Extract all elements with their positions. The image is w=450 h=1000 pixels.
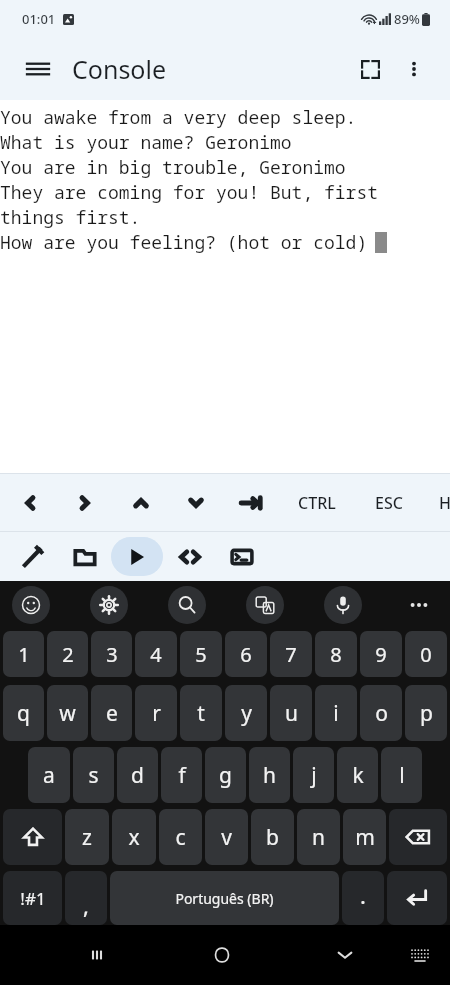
- button[interactable]: Fullscreen: [348, 47, 392, 91]
- button[interactable]: i: [315, 685, 357, 741]
- button[interactable]: t: [180, 685, 222, 741]
- button[interactable]: n: [297, 809, 340, 865]
- button[interactable]: Shift: [3, 809, 62, 865]
- button[interactable]: c: [159, 809, 202, 865]
- button[interactable]: Emoji: [12, 586, 50, 624]
- button[interactable]: Translate: [246, 586, 284, 624]
- button[interactable]: Open navigation menu: [18, 49, 58, 89]
- staticText: h: [263, 761, 276, 790]
- button[interactable]: !#1: [3, 871, 62, 925]
- button[interactable]: h: [249, 747, 290, 803]
- button[interactable]: Keyboard settings: [90, 586, 128, 624]
- staticText: 7: [285, 641, 297, 668]
- button[interactable]: o: [360, 685, 402, 741]
- staticText: They are coming for you! But, first: [0, 180, 378, 205]
- button[interactable]: Right: [59, 474, 111, 531]
- staticText: d: [131, 761, 144, 790]
- staticText: c: [175, 823, 186, 852]
- button[interactable]: y: [225, 685, 267, 741]
- button[interactable]: Voice input: [324, 586, 362, 624]
- staticText: 0: [420, 641, 432, 668]
- button[interactable]: Down: [170, 474, 222, 531]
- staticText: ,: [83, 890, 89, 920]
- button[interactable]: 7: [270, 631, 312, 677]
- button[interactable]: p: [405, 685, 447, 741]
- staticText: 1: [18, 641, 30, 668]
- staticText: t: [197, 699, 205, 728]
- button[interactable]: g: [205, 747, 246, 803]
- button[interactable]: More keyboard options: [402, 588, 436, 622]
- staticText: 2: [62, 641, 74, 668]
- button[interactable]: Switch keyboard: [396, 925, 444, 985]
- staticText: Português (BR): [175, 889, 274, 908]
- button[interactable]: k: [337, 747, 378, 803]
- button[interactable]: Tab: [225, 474, 277, 531]
- button[interactable]: Home: [196, 925, 248, 985]
- button[interactable]: More options: [392, 47, 436, 91]
- button[interactable]: 6: [225, 631, 267, 677]
- staticText: Console: [72, 52, 167, 86]
- staticText: e: [106, 699, 118, 728]
- button[interactable]: v: [205, 809, 248, 865]
- button[interactable]: Enter: [387, 871, 447, 925]
- button[interactable]: d: [117, 747, 158, 803]
- staticText: m: [355, 823, 375, 852]
- staticText: 89%: [394, 10, 420, 28]
- button[interactable]: b: [251, 809, 294, 865]
- button[interactable]: Terminal: [216, 537, 268, 576]
- button[interactable]: Run: [111, 537, 163, 576]
- staticText: You are in big trouble, Geronimo: [0, 155, 346, 180]
- button[interactable]: Backspace: [389, 809, 447, 865]
- button[interactable]: H: [413, 474, 450, 531]
- staticText: z: [82, 823, 92, 852]
- button[interactable]: You awake from a very deep sleep.: [0, 100, 450, 473]
- button[interactable]: Code: [164, 537, 216, 576]
- staticText: r: [152, 699, 161, 728]
- button[interactable]: 0: [405, 631, 447, 677]
- button[interactable]: e: [91, 685, 132, 741]
- button[interactable]: 1: [3, 631, 44, 677]
- button[interactable]: Search: [168, 586, 206, 624]
- button[interactable]: a: [28, 747, 70, 803]
- button[interactable]: ESC: [357, 474, 421, 531]
- button[interactable]: Up: [115, 474, 167, 531]
- button[interactable]: j: [293, 747, 334, 803]
- button[interactable]: Português (BR): [110, 871, 339, 925]
- button[interactable]: x: [112, 809, 156, 865]
- button[interactable]: 8: [315, 631, 357, 677]
- button[interactable]: Open file: [59, 537, 111, 576]
- button[interactable]: u: [270, 685, 312, 741]
- button[interactable]: f: [161, 747, 202, 803]
- button[interactable]: m: [343, 809, 386, 865]
- button[interactable]: CTRL: [285, 474, 349, 531]
- button[interactable]: 5: [180, 631, 222, 677]
- button[interactable]: r: [135, 685, 177, 741]
- staticText: g: [219, 761, 232, 790]
- button[interactable]: Edit: [7, 537, 59, 576]
- button[interactable]: 2: [47, 631, 88, 677]
- button[interactable]: Back: [319, 925, 371, 985]
- button[interactable]: 9: [360, 631, 402, 677]
- staticText: 5: [195, 641, 207, 668]
- staticText: x: [128, 823, 140, 852]
- staticText: n: [312, 823, 325, 852]
- staticText: 01:01: [22, 10, 56, 28]
- button[interactable]: s: [73, 747, 114, 803]
- staticText: s: [88, 761, 99, 790]
- button[interactable]: Left: [4, 474, 56, 531]
- staticText: ESC: [375, 492, 403, 514]
- staticText: things first.: [0, 205, 141, 230]
- staticText: p: [420, 699, 433, 728]
- button[interactable]: 3: [91, 631, 132, 677]
- staticText: q: [17, 699, 30, 728]
- staticText: u: [285, 699, 298, 728]
- button[interactable]: w: [47, 685, 88, 741]
- button[interactable]: Comma: [65, 871, 107, 925]
- button[interactable]: 4: [135, 631, 177, 677]
- staticText: 3: [106, 641, 118, 668]
- button[interactable]: Recent apps: [71, 925, 123, 985]
- button[interactable]: Period: [342, 871, 384, 925]
- button[interactable]: z: [65, 809, 109, 865]
- button[interactable]: q: [3, 685, 44, 741]
- button[interactable]: l: [381, 747, 422, 803]
